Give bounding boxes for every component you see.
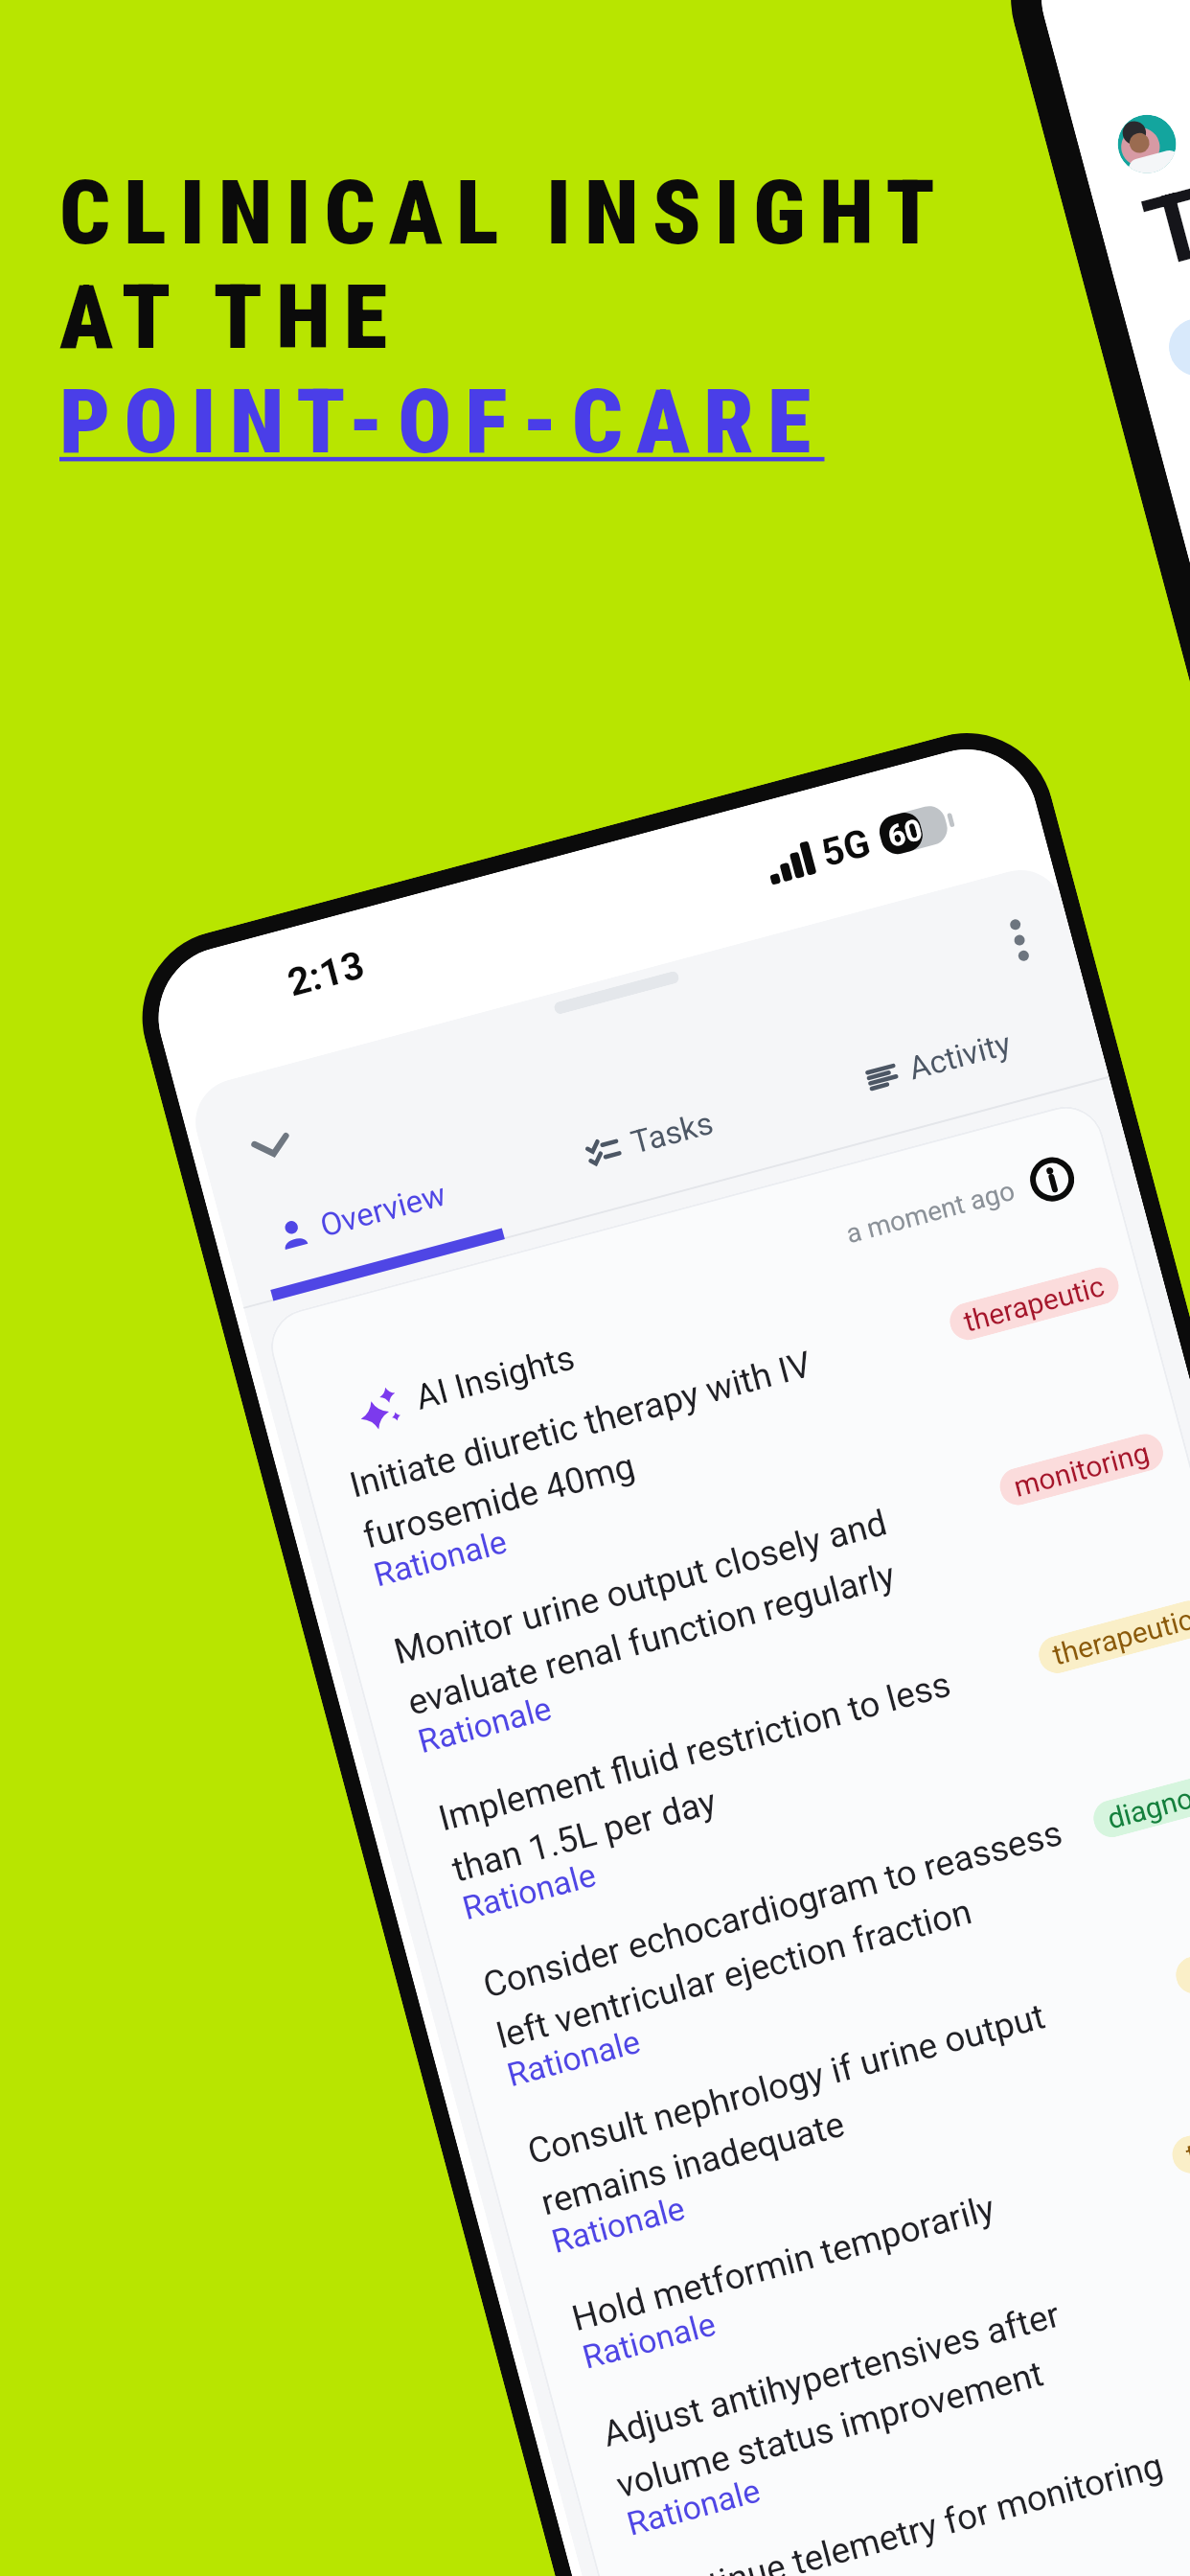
staticText: POINT-OF-CARE: [59, 370, 825, 474]
staticText: Rationale: [414, 1689, 555, 1761]
staticText: Monitor urine output closely and evaluat…: [390, 1502, 905, 1724]
staticText: 60: [884, 812, 926, 854]
staticText: Overview: [316, 1175, 450, 1244]
staticText: therapeutic: [1049, 1602, 1190, 1672]
staticText: 5G: [817, 820, 876, 876]
staticText: diagnostic: [1104, 1769, 1190, 1836]
button[interactable]: Profile: [1111, 108, 1183, 180]
staticText: AT THE: [59, 265, 401, 370]
staticText: Rationale: [370, 1522, 511, 1594]
button[interactable]: Collapse: [239, 1113, 304, 1179]
button[interactable]: Information: [1025, 1152, 1079, 1206]
staticText: therapeutic: [960, 1269, 1108, 1339]
button[interactable]: therapeutic: [460, 1592, 1190, 1959]
staticText: monitoring: [1010, 1435, 1153, 1504]
staticText: Continue telemetry for monitoring: [643, 2445, 1168, 2576]
staticText: consult: [1186, 1935, 1190, 1992]
button[interactable]: monitoring: [416, 1426, 1190, 1793]
staticText: Initiate diuretic therapy with IV furose…: [345, 1343, 830, 1557]
staticText: Adjust antihypertensives after volume st…: [599, 2294, 1078, 2506]
button[interactable]: More options: [986, 907, 1052, 973]
staticText: Implement fluid restriction to less than…: [434, 1663, 969, 1890]
staticText: Tasks: [1134, 116, 1190, 290]
button[interactable]: monitoring: [700, 2490, 1190, 2576]
staticText: Tasks: [627, 1104, 717, 1161]
button[interactable]: therapeutic: [371, 1259, 1166, 1626]
button[interactable]: therapeutic: [625, 2208, 1190, 2575]
staticText: 2:13: [283, 942, 370, 1006]
staticText: therapeutic: [1183, 2102, 1190, 2172]
staticText: Activity: [905, 1024, 1015, 1087]
staticText: Rationale: [623, 2471, 764, 2543]
button[interactable]: consult: [549, 1926, 1190, 2293]
button[interactable]: Tasks: [504, 1050, 821, 1232]
staticText: AI Insights: [411, 1337, 579, 1418]
staticText: Consult nephrology if urine output remai…: [523, 1995, 1063, 2224]
staticText: CLINICAL INSIGHT: [59, 161, 949, 265]
staticText: Rationale: [547, 2189, 689, 2261]
staticText: Rationale: [503, 2022, 644, 2094]
button[interactable]: Activity: [793, 973, 1109, 1155]
staticText: Consider echocardiogram to reassess left…: [479, 1812, 1081, 2057]
staticText: a moment ago: [843, 1175, 1018, 1250]
staticText: Hold metformin temporarily: [568, 2187, 1000, 2339]
button[interactable]: diagnostic: [505, 1759, 1190, 2126]
button[interactable]: therapeutic: [594, 2092, 1190, 2408]
button[interactable]: Overview: [216, 1127, 532, 1309]
button[interactable]: Open: [1163, 289, 1190, 382]
button[interactable]: monitoring: [669, 2375, 1190, 2576]
staticText: Rationale: [578, 2304, 720, 2376]
staticText: Rationale: [458, 1855, 600, 1927]
